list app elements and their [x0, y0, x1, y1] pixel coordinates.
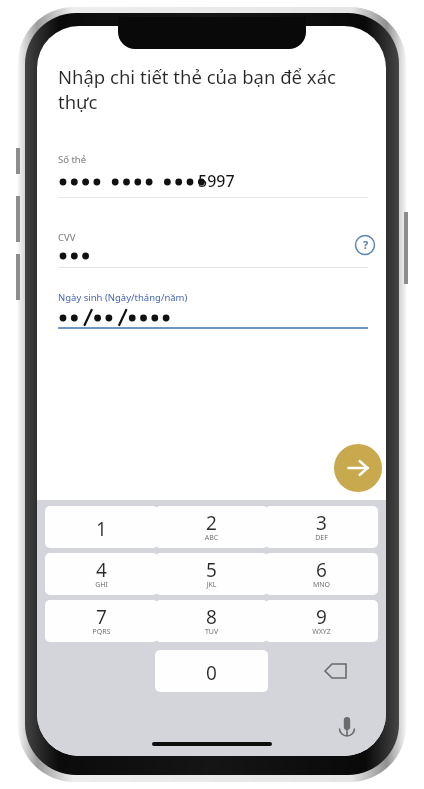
- button[interactable]: Close: [376, 34, 386, 70]
- staticText: 5997: [198, 170, 235, 192]
- button[interactable]: Continue: [334, 444, 382, 492]
- button[interactable]: 2: [155, 506, 268, 548]
- button[interactable]: 7: [45, 600, 158, 642]
- button[interactable]: 5: [155, 553, 268, 595]
- button[interactable]: 4: [45, 553, 158, 595]
- staticText: 6: [265, 557, 378, 581]
- staticText: 8: [155, 604, 268, 628]
- button[interactable]: 5997: [58, 166, 368, 196]
- staticText: Số thẻ: [58, 153, 87, 166]
- staticText: PQRS: [45, 627, 158, 639]
- staticText: GHI: [45, 580, 158, 592]
- button[interactable]: 3: [265, 506, 378, 548]
- button[interactable]: Delete: [301, 650, 371, 692]
- button[interactable]: Help: [350, 230, 380, 260]
- button[interactable]: 0: [155, 650, 268, 692]
- staticText: 7: [45, 604, 158, 628]
- staticText: Ngày sinh (Ngày/tháng/năm): [58, 291, 188, 304]
- staticText: 2: [155, 510, 268, 534]
- staticText: JKL: [155, 580, 268, 592]
- button[interactable]: Voice input: [329, 709, 365, 745]
- staticText: DEF: [265, 533, 378, 545]
- staticText: 0: [155, 660, 268, 684]
- staticText: MNO: [265, 580, 378, 592]
- staticText: WXYZ: [265, 627, 378, 639]
- staticText: 1: [45, 516, 158, 540]
- staticText: CVV: [58, 231, 76, 244]
- staticText: TUV: [155, 627, 268, 639]
- staticText: 3: [265, 510, 378, 534]
- button[interactable]: [58, 306, 358, 332]
- button[interactable]: [58, 244, 338, 270]
- button[interactable]: 6: [265, 553, 378, 595]
- button[interactable]: 8: [155, 600, 268, 642]
- staticText: 9: [265, 604, 378, 628]
- button[interactable]: 1: [45, 506, 158, 548]
- staticText: 5: [155, 557, 268, 581]
- staticText: ABC: [155, 533, 268, 545]
- staticText: ?: [363, 237, 369, 252]
- staticText: Nhập chi tiết thẻ của bạn để xác thực: [58, 64, 358, 115]
- staticText: 4: [45, 557, 158, 581]
- button[interactable]: 9: [265, 600, 378, 642]
